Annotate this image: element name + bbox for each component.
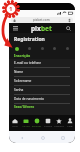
button[interactable]: Favoritos [53,115,64,131]
button[interactable]: Perfil [64,115,75,131]
staticText: Nome [14,70,24,74]
button[interactable]: Step 4 [52,46,57,51]
button[interactable]: pixbet.com [11,17,73,23]
button[interactable]: Step 1 [14,46,19,51]
staticText: Sexo/Gênero [14,105,35,109]
staticText: bet [41,24,52,33]
staticText: Favoritos [54,125,64,128]
button[interactable]: E-mail ou telefone [14,59,70,68]
staticText: 1 [9,5,13,13]
button[interactable]: Sobrenome [14,77,70,86]
button[interactable]: Nome [14,68,70,77]
staticText: Inscrição [14,53,31,58]
staticText: Data de nascimento [14,97,44,101]
button[interactable]: pix [31,24,52,33]
staticText: E-mail ou telefone [14,61,42,65]
staticText: Esportes [32,125,41,128]
staticText: Senha [14,88,24,92]
staticText: Início [12,125,18,128]
button[interactable]: Home [39,134,46,141]
button[interactable]: Cassino [42,115,53,131]
staticText: Cassino [44,125,52,128]
staticText: Sobrenome [14,79,32,83]
staticText: pix [31,24,41,33]
button[interactable]: Esportes [31,115,42,131]
button[interactable]: Step 5 [65,46,70,51]
button[interactable]: Step 3 [40,46,45,51]
button[interactable]: Ao vivo [20,115,31,131]
staticText: Registration [14,36,45,43]
button[interactable]: Recents [59,134,66,141]
button[interactable]: Back [18,134,25,141]
button[interactable]: Search [65,25,72,32]
button[interactable]: Step 2 [27,46,32,51]
button[interactable]: Início [9,115,20,131]
button[interactable]: Menu [12,25,19,32]
staticText: Perfil [67,125,73,128]
staticText: pixbet.com [33,18,50,22]
button[interactable]: Senha [14,86,70,95]
button[interactable]: Data de nascimento [14,95,70,104]
staticText: Ao vivo [22,125,30,128]
